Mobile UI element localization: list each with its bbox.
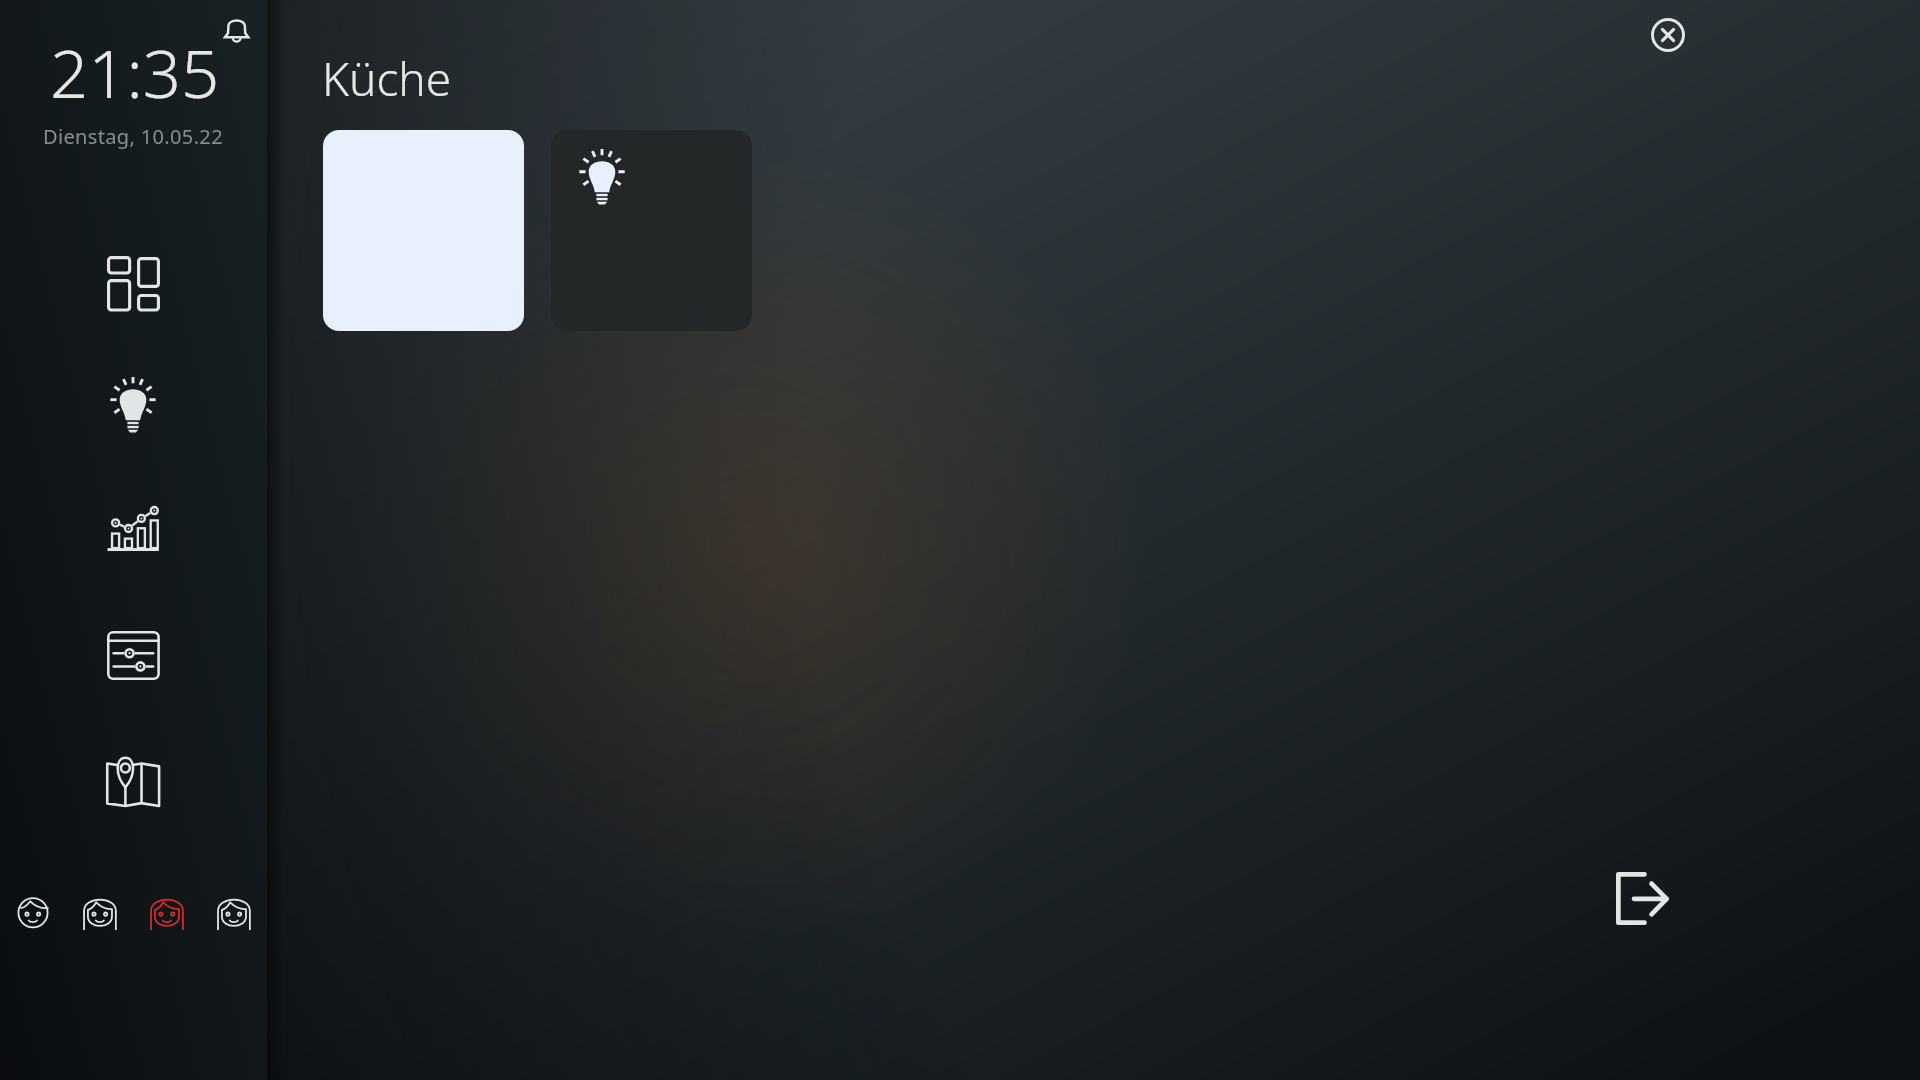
button[interactable]: Dashboard: [86, 245, 180, 317]
button[interactable]: Statistics: [86, 495, 180, 567]
button[interactable]: Notifications: [217, 16, 251, 50]
button[interactable]: Abmelden: [1616, 872, 1669, 925]
button[interactable]: Settings: [86, 619, 180, 691]
button[interactable]: Map: [86, 745, 180, 817]
button[interactable]: Lights: [86, 369, 180, 441]
staticText: 21:35: [50, 26, 220, 117]
button[interactable]: Profil Lisa: [143, 889, 191, 937]
button[interactable]: Licht: [551, 130, 752, 331]
staticText: Dienstag, 10.05.22: [43, 123, 223, 150]
staticText: Küche: [322, 47, 452, 110]
button[interactable]: Schließen: [1651, 18, 1685, 52]
button[interactable]: Profil Anna: [76, 889, 124, 937]
button[interactable]: Profil Max: [9, 889, 57, 937]
button[interactable]: Gerät: [323, 130, 524, 331]
button[interactable]: Profil Eva: [210, 889, 258, 937]
